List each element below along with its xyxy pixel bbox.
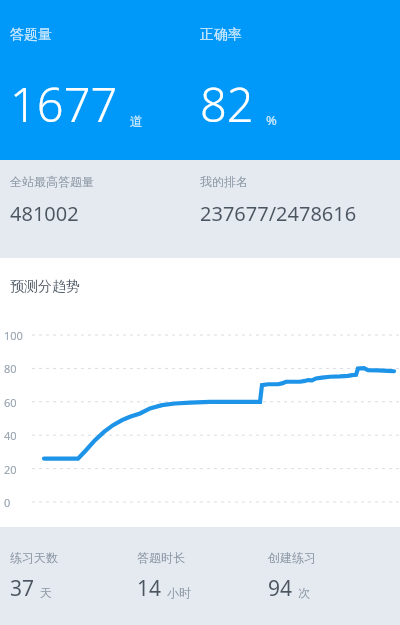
button[interactable]: 正确率 xyxy=(200,0,390,160)
staticText: 80 xyxy=(4,361,17,376)
staticText: 小时 xyxy=(167,585,191,600)
staticText: 我的排名 xyxy=(200,174,248,189)
staticText: 20 xyxy=(4,462,17,477)
staticText: 100 xyxy=(4,328,23,343)
staticText: 预测分趋势 xyxy=(10,278,80,296)
other: 预测分趋势 折线图 xyxy=(0,258,400,527)
staticText: 正确率 xyxy=(200,26,242,44)
button[interactable]: 全站最高答题量 xyxy=(10,160,200,258)
button[interactable]: 练习天数 xyxy=(10,527,135,625)
button[interactable]: 答题量 xyxy=(10,0,200,160)
staticText: 237677/2478616 xyxy=(200,200,357,227)
staticText: 全站最高答题量 xyxy=(10,174,94,189)
staticText: 37 xyxy=(10,574,35,603)
staticText: 次 xyxy=(298,585,310,600)
button[interactable]: 我的排名 xyxy=(200,160,395,258)
staticText: 答题量 xyxy=(10,26,52,44)
staticText: % xyxy=(266,111,277,129)
staticText: 60 xyxy=(4,395,17,410)
staticText: 82 xyxy=(200,72,254,136)
staticText: 0 xyxy=(4,495,11,510)
button[interactable]: 创建练习 xyxy=(268,527,393,625)
staticText: 14 xyxy=(137,574,162,603)
staticText: 道 xyxy=(130,113,143,129)
staticText: 天 xyxy=(40,585,52,600)
staticText: 40 xyxy=(4,428,17,443)
staticText: 94 xyxy=(268,574,293,603)
staticText: 481002 xyxy=(10,200,79,227)
staticText: 练习天数 xyxy=(10,550,58,565)
staticText: 1677 xyxy=(10,72,118,136)
staticText: 创建练习 xyxy=(268,550,316,565)
staticText: 答题时长 xyxy=(137,550,185,565)
button[interactable]: 答题时长 xyxy=(137,527,262,625)
